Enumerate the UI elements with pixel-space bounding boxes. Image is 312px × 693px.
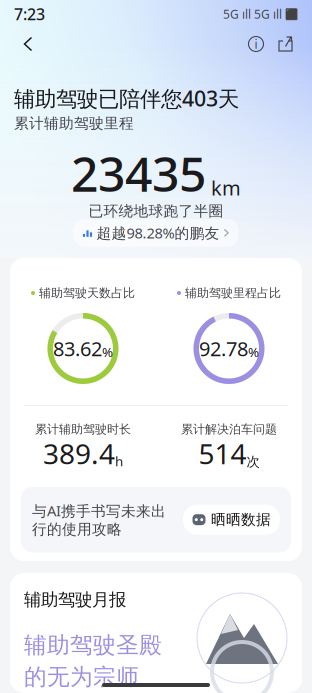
button[interactable]: 晒晒数据 <box>183 505 280 535</box>
staticText: 累计解决泊车问题 <box>181 422 277 437</box>
button[interactable]: Share <box>271 28 301 59</box>
staticText: 5G ıll 5G ıll <box>223 6 282 22</box>
staticText: 辅助驾驶已陪伴您403天 <box>14 84 239 112</box>
staticText: 累计辅助驾驶时长 <box>35 422 131 437</box>
staticText: % <box>248 343 259 361</box>
staticText: 92.78 <box>199 335 248 362</box>
staticText: ⬛ <box>282 7 298 21</box>
staticText: 的无为宗师 <box>24 663 139 691</box>
button[interactable]: 超越98.28%的鹏友 <box>73 219 238 247</box>
staticText: km <box>211 174 241 201</box>
staticText: 次 <box>246 453 259 470</box>
staticText: 超越98.28%的鹏友 <box>96 223 219 243</box>
staticText: 累计辅助驾驶里程 <box>14 114 134 132</box>
staticText: 83.62 <box>53 335 102 362</box>
staticText: 辅助驾驶圣殿 <box>24 631 162 659</box>
staticText: 7:23 <box>14 3 45 25</box>
button[interactable]: Back <box>11 29 45 58</box>
staticText: 辅助驾驶里程占比 <box>185 286 281 300</box>
staticText: 23435 <box>71 141 206 205</box>
staticText: h <box>115 452 123 470</box>
staticText: 辅助驾驶月报 <box>24 589 126 610</box>
staticText: % <box>102 343 113 361</box>
staticText: 389.4 <box>43 435 115 472</box>
staticText: 514 <box>198 435 246 472</box>
staticText: 与AI携手书写未来出行的使用攻略 <box>32 501 166 538</box>
staticText: 辅助驾驶天数占比 <box>39 286 135 300</box>
staticText: 晒晒数据 <box>211 511 271 529</box>
staticText: 已环绕地球跑了半圈 <box>88 202 223 220</box>
button[interactable]: Info <box>241 29 271 59</box>
staticText: i <box>254 36 257 52</box>
